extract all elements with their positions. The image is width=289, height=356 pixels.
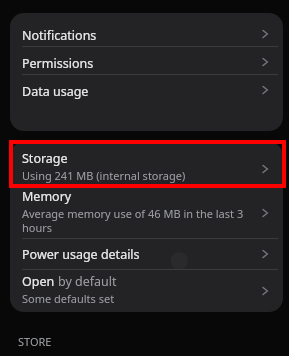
button[interactable]: Notifications [10, 22, 283, 46]
button[interactable]: Data usage [10, 78, 283, 102]
button[interactable]: Permissions [10, 50, 283, 74]
staticText: Memory [22, 188, 72, 205]
other: Storage [256, 159, 276, 179]
button[interactable]: Power usage details [10, 243, 283, 265]
button[interactable]: Memory [10, 188, 283, 238]
staticText: Average memory use of 46 MB in the last … [22, 206, 247, 236]
staticText: Data usage [22, 83, 89, 100]
staticText: Notifications [22, 27, 97, 44]
staticText: Open [22, 273, 58, 290]
staticText: STORE [18, 334, 52, 349]
other: Open by default [256, 281, 276, 301]
staticText: Permissions [22, 55, 94, 72]
staticText: Using 241 MB (internal storage) [22, 168, 186, 183]
other: Data usage [256, 80, 276, 100]
staticText: Power usage details [22, 246, 140, 263]
button[interactable]: Storage [10, 150, 283, 188]
button[interactable]: Open [10, 273, 283, 309]
other: Memory [256, 203, 276, 223]
staticText: Some defaults set [22, 291, 115, 306]
other: Power usage details [256, 244, 276, 264]
staticText: Storage [22, 150, 68, 167]
other: Permissions [256, 52, 276, 72]
staticText: by default [58, 273, 117, 290]
other: Notifications [256, 24, 276, 44]
